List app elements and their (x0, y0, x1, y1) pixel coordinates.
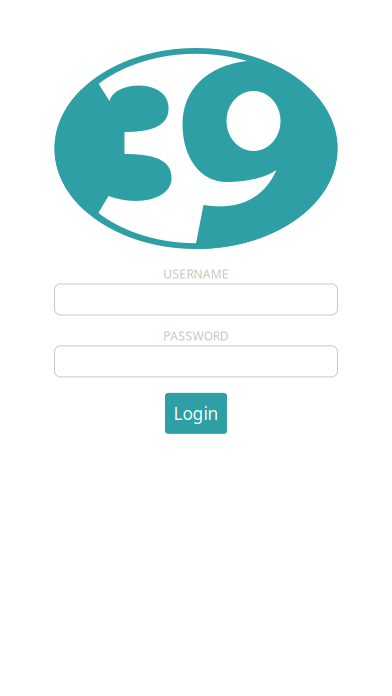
staticText: USERNAME (163, 266, 229, 282)
button[interactable]: Login (165, 393, 227, 434)
staticText: Login (173, 402, 218, 425)
staticText: PASSWORD (163, 328, 229, 344)
